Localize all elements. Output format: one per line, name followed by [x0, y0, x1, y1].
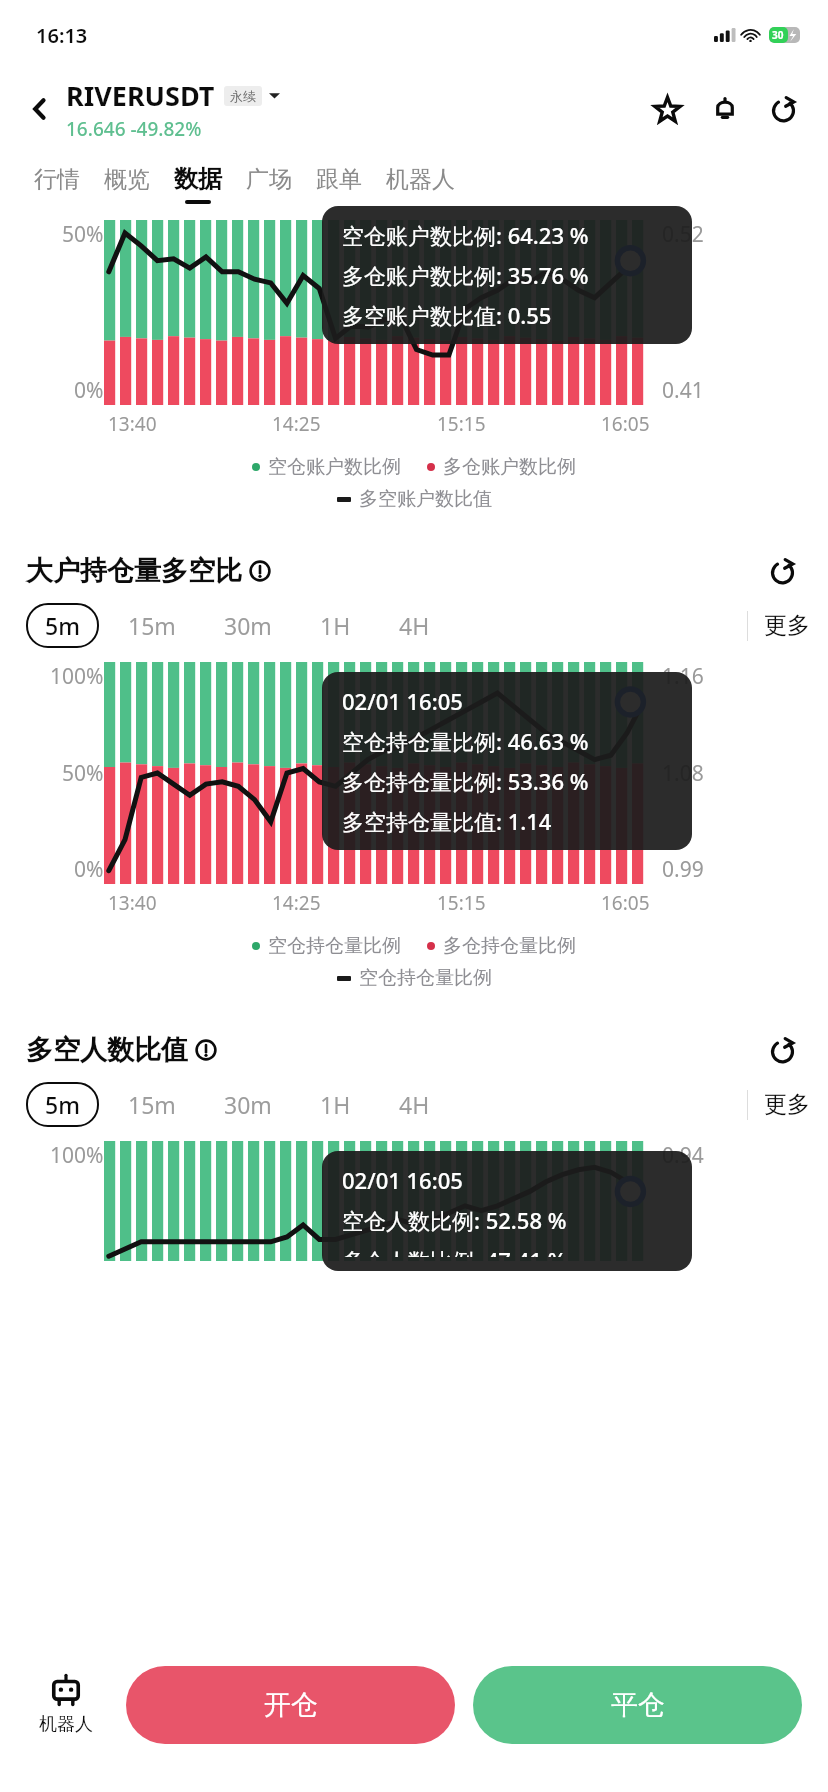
staticText: 行情: [34, 165, 80, 194]
staticText: 16:05: [601, 890, 650, 916]
button[interactable]: 机器人: [18, 1670, 114, 1740]
staticText: 15:15: [437, 411, 486, 437]
staticText: 多空账户数比值: 0.55: [342, 300, 552, 330]
staticText: 15m: [128, 1089, 176, 1120]
staticText: 0%: [74, 855, 104, 884]
staticText: 空仓持仓量比例: 46.63 %: [342, 726, 589, 756]
staticText: 空仓账户数比例: [268, 455, 401, 479]
button[interactable]: Share: [762, 88, 804, 130]
button[interactable]: 30m: [205, 603, 291, 648]
button[interactable]: 5m: [26, 1082, 99, 1127]
staticText: 永续: [230, 88, 256, 104]
staticText: 16:05: [601, 411, 650, 437]
staticText: 空仓持仓量比例: [359, 966, 492, 990]
staticText: 多仓账户数比例: 35.76 %: [342, 260, 589, 290]
staticText: 多空账户数比值: [359, 487, 492, 511]
button[interactable]: 30m: [205, 1082, 291, 1127]
button[interactable]: 概览: [92, 148, 162, 220]
button[interactable]: 跟单: [304, 148, 374, 220]
staticText: 0.41: [662, 376, 704, 405]
button[interactable]: 开仓: [126, 1666, 455, 1744]
staticText: 机器人: [386, 165, 455, 194]
button[interactable]: Favorite: [646, 88, 688, 130]
button[interactable]: 1H: [301, 1082, 370, 1127]
staticText: 30m: [224, 1089, 272, 1120]
staticText: 广场: [246, 165, 292, 194]
button[interactable]: 1H: [301, 603, 370, 648]
staticText: RIVERUSDT: [66, 77, 215, 114]
staticText: 4H: [399, 1089, 430, 1120]
staticText: 100%: [50, 1141, 104, 1170]
staticText: 数据: [174, 164, 222, 194]
button[interactable]: 15m: [109, 603, 195, 648]
staticText: 13:40: [108, 890, 157, 916]
button[interactable]: 5m: [26, 603, 99, 648]
button[interactable]: Back: [20, 89, 60, 129]
button[interactable]: 4H: [380, 1082, 449, 1127]
staticText: 50%: [62, 759, 104, 788]
staticText: 14:25: [272, 411, 321, 437]
staticText: 开仓: [264, 1688, 318, 1722]
staticText: 1.16: [662, 662, 704, 691]
staticText: 机器人: [39, 1713, 93, 1736]
staticText: 多仓持仓量比例: 53.36 %: [342, 766, 589, 796]
button[interactable]: 多空人数比值: [26, 1030, 802, 1070]
staticText: 多仓账户数比例: [443, 455, 576, 479]
staticText: 0.94: [662, 1141, 704, 1170]
staticText: 多空人数比值: [26, 1033, 188, 1067]
staticText: 0.52: [662, 220, 704, 249]
staticText: 30: [772, 28, 784, 42]
button[interactable]: 更多: [748, 1090, 810, 1119]
staticText: 多仓持仓量比例: [443, 934, 576, 958]
button[interactable]: Expand chart: [762, 1030, 802, 1070]
staticText: 02/01 16:05: [342, 1165, 463, 1195]
staticText: 大户持仓量多空比: [26, 554, 242, 588]
staticText: 5m: [45, 1089, 80, 1120]
staticText: 50%: [62, 220, 104, 249]
button[interactable]: 广场: [234, 148, 304, 220]
button[interactable]: 行情: [22, 148, 92, 220]
button[interactable]: Alerts: [704, 88, 746, 130]
staticText: 跟单: [316, 165, 362, 194]
button[interactable]: 平仓: [473, 1666, 802, 1744]
staticText: 02/01 16:05: [342, 686, 463, 716]
staticText: 空仓账户数比例: 64.23 %: [342, 220, 589, 250]
staticText: 16.646 -49.82%: [66, 116, 202, 142]
staticText: 100%: [50, 662, 104, 691]
staticText: 更多: [764, 1090, 810, 1119]
staticText: 1.08: [662, 759, 704, 788]
staticText: 14:25: [272, 890, 321, 916]
button[interactable]: 机器人: [374, 148, 467, 220]
staticText: 15:15: [437, 890, 486, 916]
staticText: 概览: [104, 165, 150, 194]
staticText: 13:40: [108, 411, 157, 437]
staticText: 平仓: [611, 1688, 665, 1722]
staticText: 更多: [764, 611, 810, 640]
staticText: 5m: [45, 610, 80, 641]
button[interactable]: 4H: [380, 603, 449, 648]
staticText: 空仓人数比例: 52.58 %: [342, 1205, 567, 1235]
button[interactable]: 15m: [109, 1082, 195, 1127]
staticText: 0%: [74, 376, 104, 405]
button[interactable]: Expand chart: [762, 551, 802, 591]
staticText: 4H: [399, 610, 430, 641]
staticText: 15m: [128, 610, 176, 641]
staticText: 1H: [320, 1089, 351, 1120]
staticText: 多仓人数比例: 47.41 %: [342, 1245, 567, 1257]
staticText: 30m: [224, 610, 272, 641]
button[interactable]: 数据: [162, 148, 234, 220]
staticText: 16:13: [36, 22, 88, 49]
staticText: 空仓持仓量比例: [268, 934, 401, 958]
button[interactable]: 更多: [748, 611, 810, 640]
staticText: 1H: [320, 610, 351, 641]
staticText: 0.99: [662, 855, 704, 884]
staticText: 多空持仓量比值: 1.14: [342, 806, 552, 836]
button[interactable]: 大户持仓量多空比: [26, 551, 802, 591]
